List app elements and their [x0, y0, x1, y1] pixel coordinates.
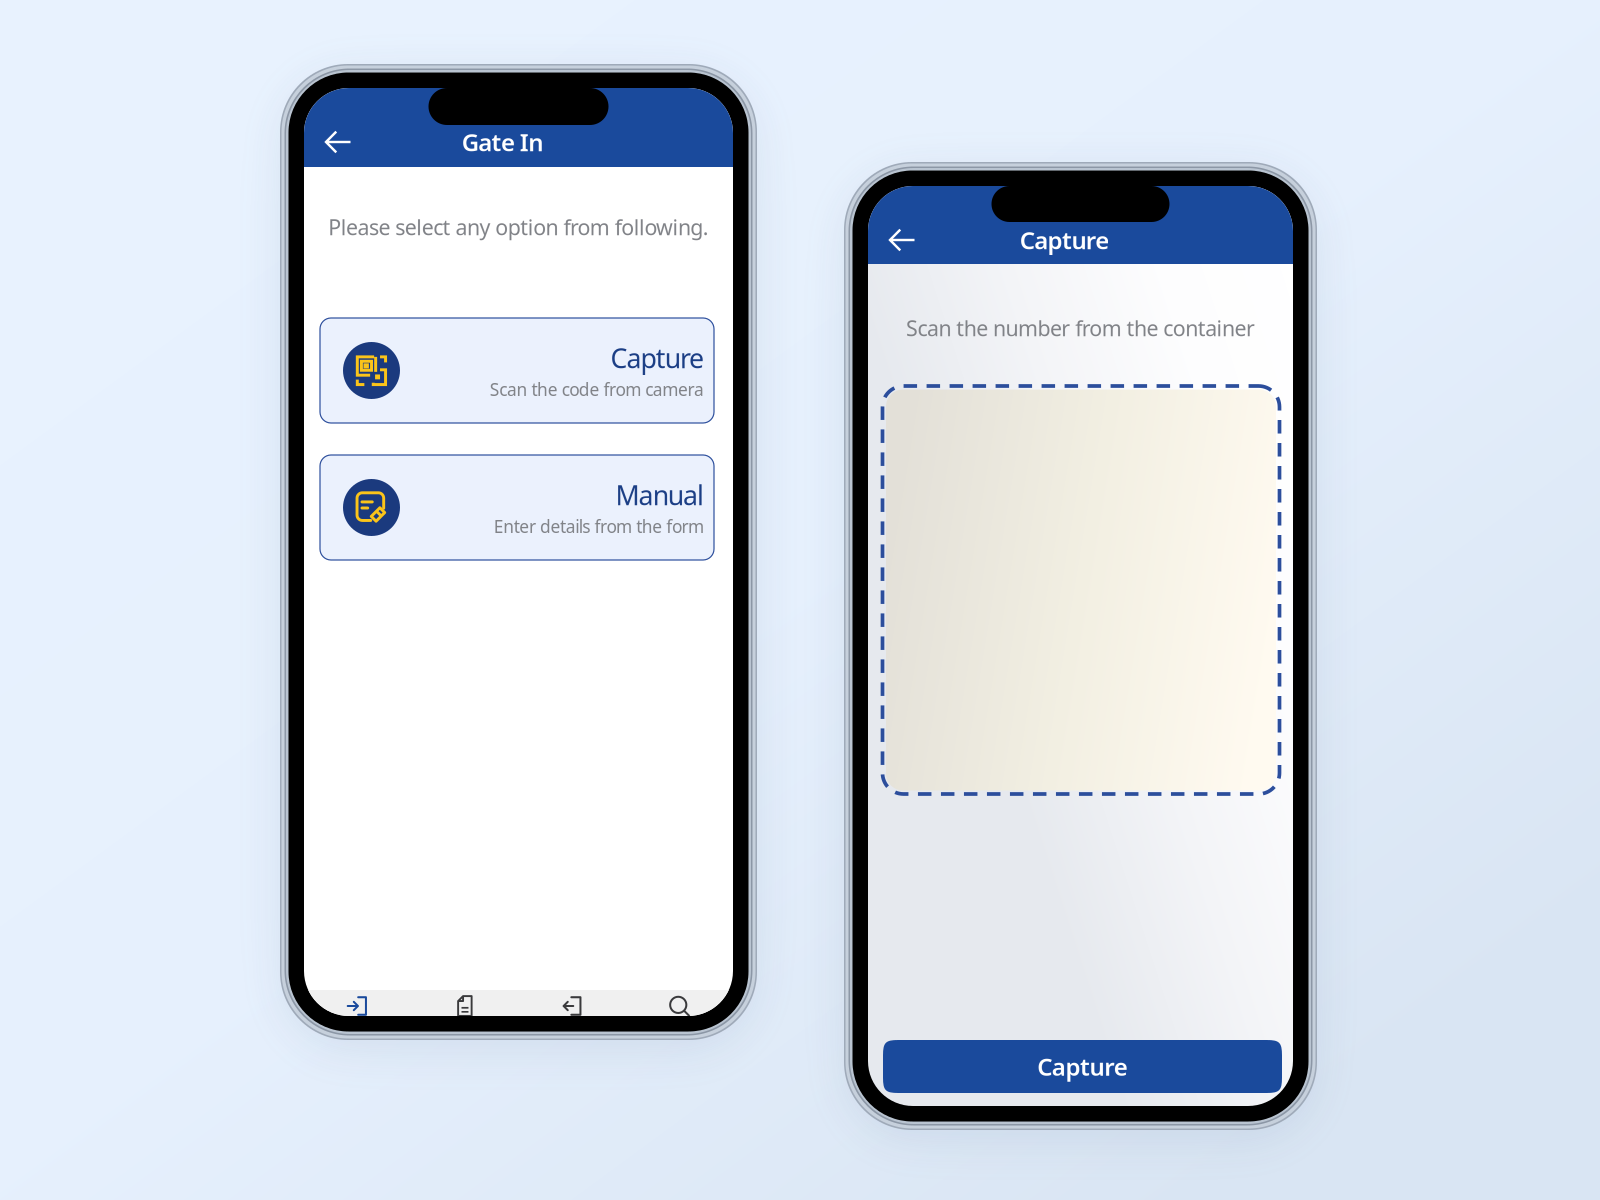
staticText: Scan the code from camera	[490, 378, 704, 401]
staticText: Capture	[1020, 224, 1109, 256]
button[interactable]: Gate Out	[518, 987, 626, 1025]
staticText: Enter details from the form	[494, 515, 704, 538]
button[interactable]: Manual	[320, 455, 714, 560]
button[interactable]: Back	[879, 220, 925, 260]
staticText: Please select any option from following.	[328, 213, 709, 241]
button[interactable]: Back	[315, 122, 361, 162]
button[interactable]: Gate In	[304, 987, 411, 1025]
staticText: Manual	[615, 477, 704, 513]
staticText: Capture	[1037, 1051, 1128, 1082]
staticText: Gate In	[462, 126, 543, 158]
button[interactable]: Capture	[320, 318, 714, 423]
button[interactable]: Search	[626, 987, 733, 1025]
staticText: Scan the number from the container	[906, 314, 1255, 342]
button[interactable]: Capture	[883, 1040, 1282, 1093]
button[interactable]: Documents	[411, 987, 518, 1025]
staticText: Capture	[610, 340, 704, 376]
